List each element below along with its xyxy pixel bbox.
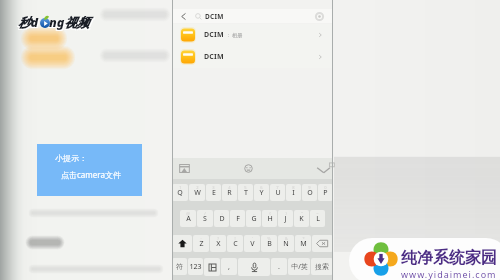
button[interactable]: " <box>294 210 309 227</box>
button[interactable]: Shift <box>172 235 192 252</box>
staticText: R <box>227 188 232 198</box>
staticText: L <box>316 214 320 224</box>
staticText: E <box>212 188 216 198</box>
button[interactable]: % <box>261 235 277 252</box>
staticText: I <box>292 188 295 198</box>
staticText: 中/英 <box>291 262 308 272</box>
button[interactable]: 4 <box>222 184 237 201</box>
button[interactable]: Input method <box>204 258 220 276</box>
button[interactable]: Backspace <box>312 235 333 252</box>
staticText: M <box>300 239 307 249</box>
button[interactable]: 中/英 <box>288 258 310 275</box>
button[interactable]: 搜索 <box>311 258 333 275</box>
staticText: 纯净系统家园 <box>401 248 497 268</box>
button[interactable]: ! <box>227 235 243 252</box>
staticText: " <box>301 211 303 216</box>
staticText: 5 <box>244 185 247 190</box>
button[interactable]: ) <box>278 210 293 227</box>
staticText: 点击camera文件 <box>61 169 121 180</box>
button[interactable]: Clear <box>315 12 324 21</box>
staticText: S <box>203 214 207 224</box>
button[interactable]: 6 <box>254 184 269 201</box>
button[interactable]: ' <box>244 235 260 252</box>
staticText: 9 <box>308 185 311 190</box>
staticText: 4 <box>228 185 231 190</box>
button[interactable]: 1 <box>172 184 188 201</box>
staticText: P <box>323 188 328 198</box>
button[interactable]: Space / voice input <box>238 258 270 276</box>
staticText: 3 <box>212 185 215 190</box>
button[interactable]: & <box>278 235 294 252</box>
staticText: www.yidaimei.com <box>401 268 497 280</box>
staticText: @ <box>186 211 190 216</box>
staticText: ; <box>200 236 202 241</box>
button[interactable]: . <box>271 258 287 275</box>
staticText: / <box>204 211 206 216</box>
button[interactable]: * <box>295 235 311 252</box>
staticText: , <box>228 262 230 272</box>
staticText: 秒d <box>18 14 39 31</box>
button[interactable]: ~ <box>310 210 325 227</box>
staticText: 秒d <box>17 15 38 32</box>
staticText: O <box>307 188 313 198</box>
staticText: 1 <box>179 185 182 190</box>
button[interactable]: @ <box>180 210 196 227</box>
button[interactable]: 3 <box>206 184 221 201</box>
staticText: J <box>284 214 287 224</box>
staticText: 秒d <box>19 15 40 32</box>
button[interactable]: Hide keyboard <box>311 161 333 177</box>
staticText: Y <box>259 188 264 198</box>
button[interactable]: 2 <box>189 184 205 201</box>
button[interactable]: ( <box>262 210 277 227</box>
staticText: ? <box>217 236 219 241</box>
staticText: * <box>302 236 305 241</box>
staticText: 搜索 <box>315 262 329 271</box>
staticText: 8 <box>292 185 295 190</box>
staticText: D <box>219 214 225 224</box>
staticText: ! <box>234 236 236 241</box>
staticText: DCIM <box>205 12 224 21</box>
staticText: _ <box>237 211 239 216</box>
button[interactable]: 8 <box>286 184 301 201</box>
button[interactable]: Gallery <box>178 162 191 175</box>
button[interactable]: 7 <box>270 184 285 201</box>
button[interactable]: DCIM <box>172 46 333 68</box>
button[interactable]: Back <box>179 12 188 21</box>
button[interactable]: 123 <box>188 258 203 275</box>
staticText: 相册 <box>232 32 242 38</box>
button[interactable]: ; <box>193 235 209 252</box>
button[interactable]: , <box>221 258 237 275</box>
button[interactable]: 小提示： <box>37 144 142 196</box>
staticText: ng视频 <box>48 15 89 32</box>
staticText: % <box>267 236 271 241</box>
staticText: ng视频 <box>49 14 90 31</box>
staticText: H <box>267 214 273 224</box>
staticText: ) <box>285 211 287 216</box>
staticText: ' <box>252 236 253 241</box>
button[interactable]: ? <box>210 235 226 252</box>
button[interactable]: _ <box>230 210 245 227</box>
button[interactable]: 0 <box>318 184 333 201</box>
staticText: C <box>233 239 238 249</box>
staticText: Z <box>199 239 204 249</box>
button[interactable]: DCIM <box>172 24 333 46</box>
staticText: V <box>250 239 255 249</box>
button[interactable]: Emoji <box>242 162 255 175</box>
button[interactable]: 5 <box>238 184 253 201</box>
staticText: A <box>186 214 191 224</box>
staticText: N <box>283 239 289 249</box>
staticText: B <box>267 239 272 249</box>
staticText: 2 <box>196 185 199 190</box>
staticText: 0 <box>324 185 327 190</box>
button[interactable]: : <box>214 210 229 227</box>
staticText: 小提示： <box>55 153 87 163</box>
button[interactable]: 符 <box>172 258 187 275</box>
staticText: K <box>299 214 304 224</box>
button[interactable]: 9 <box>302 184 317 201</box>
staticText: 7 <box>276 185 279 190</box>
staticText: W <box>194 188 201 198</box>
button[interactable]: / <box>197 210 213 227</box>
staticText: DCIM <box>204 30 224 40</box>
button[interactable]: - <box>246 210 261 227</box>
